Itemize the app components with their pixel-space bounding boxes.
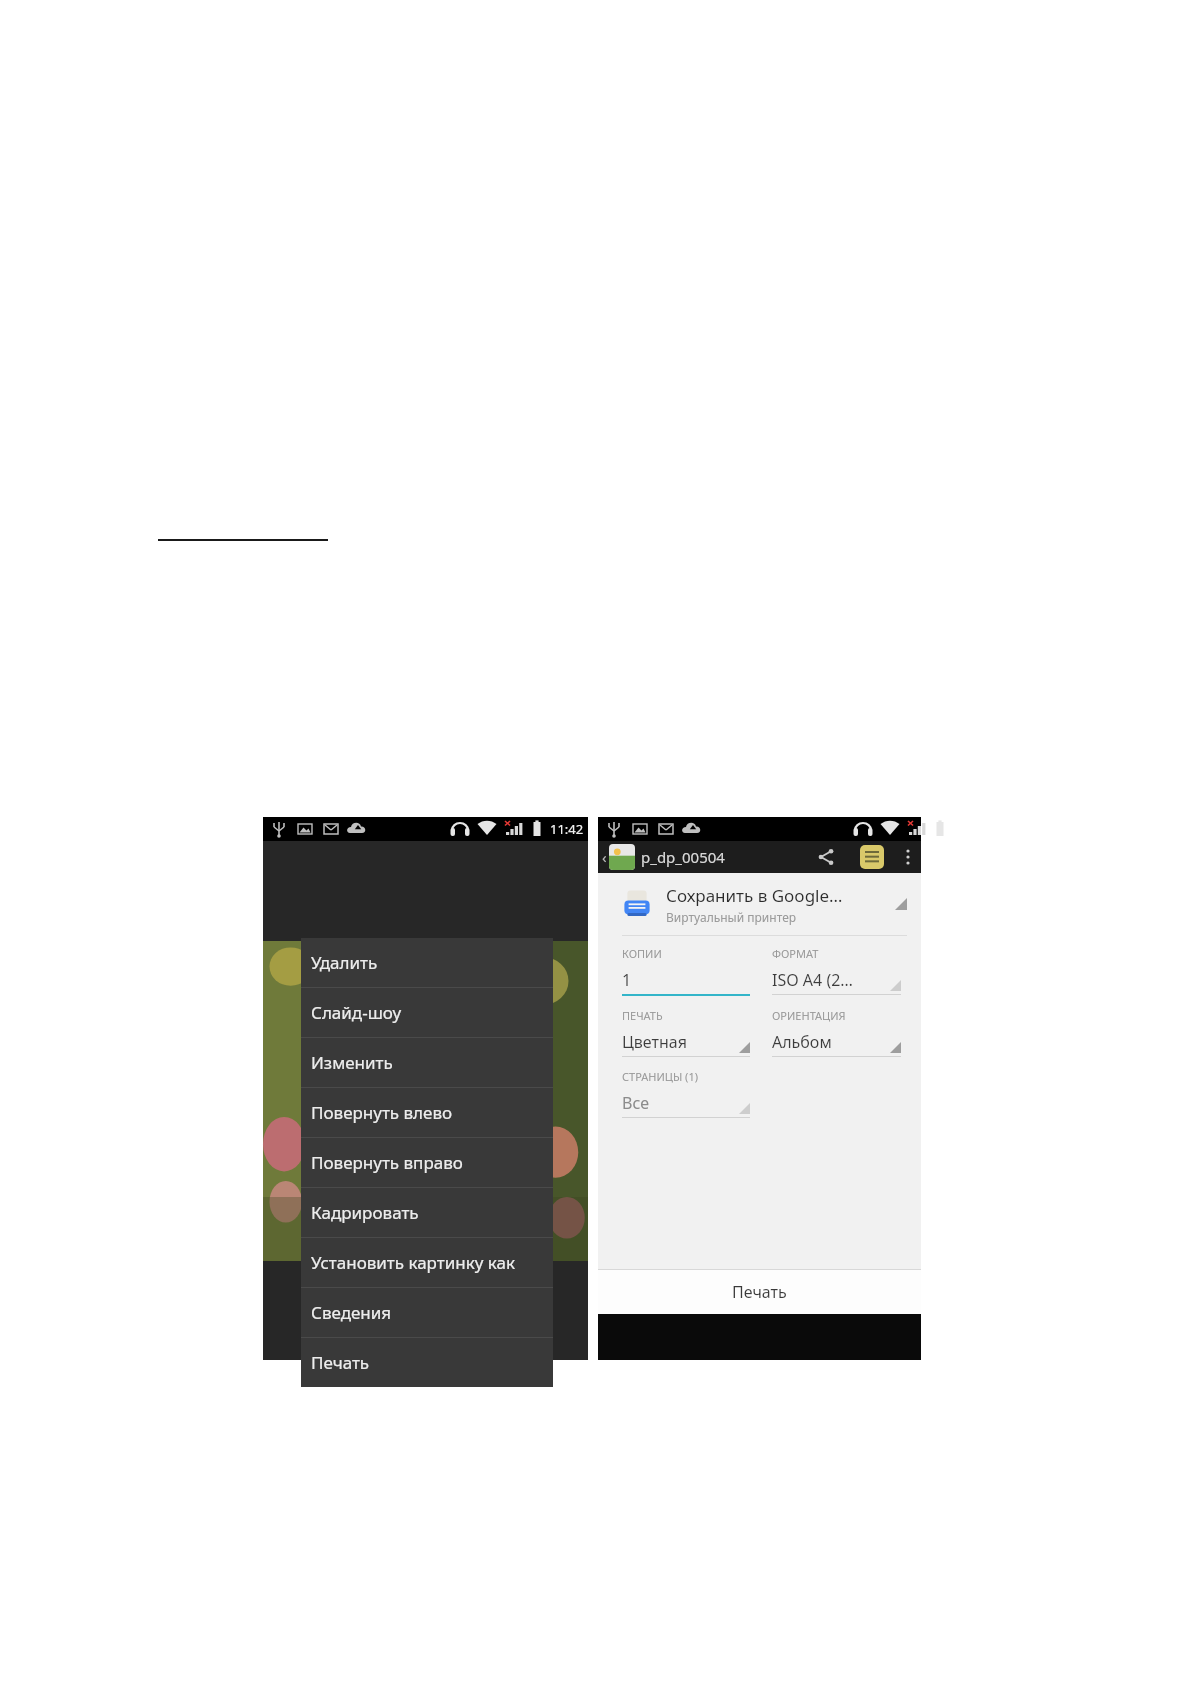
staticText: Виртуальный принтер (666, 909, 797, 925)
staticText: Печать (311, 1351, 370, 1374)
staticText: Альбом (772, 1031, 832, 1053)
button[interactable]: Сведения (301, 1288, 553, 1337)
button[interactable]: Печать (301, 1338, 553, 1387)
staticText: Цветная (622, 1031, 687, 1053)
button[interactable]: Повернуть вправо (301, 1138, 553, 1187)
staticText: 1 (622, 969, 632, 991)
staticText: ISO A4 (2… (772, 969, 854, 991)
staticText: Повернуть влево (311, 1101, 453, 1124)
staticText: Изменить (311, 1051, 393, 1074)
staticText: Печать (732, 1281, 787, 1303)
button[interactable]: Изменить (301, 1038, 553, 1087)
button[interactable]: ФОРМАТ (772, 946, 901, 995)
button[interactable]: ПЕЧАТЬ (622, 1008, 750, 1057)
staticText: ‹ (602, 847, 607, 867)
button[interactable]: More options (895, 841, 921, 873)
staticText: p_dp_00504 (641, 847, 725, 867)
staticText: Сведения (311, 1301, 392, 1324)
button[interactable]: СТРАНИЦЫ (1) (622, 1069, 750, 1118)
button[interactable]: Кадрировать (301, 1188, 553, 1237)
staticText: ОРИЕНТАЦИЯ (772, 1008, 846, 1023)
staticText: ФОРМАТ (772, 946, 819, 961)
button[interactable]: Share (803, 841, 849, 873)
staticText: СТРАНИЦЫ (1) (622, 1069, 698, 1084)
staticText: Кадрировать (311, 1201, 419, 1224)
button[interactable]: Слайд-шоу (301, 988, 553, 1037)
staticText: Установить картинку как (311, 1251, 515, 1274)
staticText: КОПИИ (622, 946, 662, 961)
button[interactable]: КОПИИ (622, 946, 750, 996)
staticText: Сохранить в Google… (666, 884, 843, 907)
staticText: 11:42 (550, 820, 584, 838)
button[interactable]: Печать (598, 1270, 921, 1314)
staticText: Повернуть вправо (311, 1151, 463, 1174)
staticText: Все (622, 1092, 649, 1114)
staticText: ПЕЧАТЬ (622, 1008, 663, 1023)
staticText: Удалить (311, 951, 378, 974)
button[interactable]: Удалить (301, 938, 553, 987)
button[interactable]: ОРИЕНТАЦИЯ (772, 1008, 901, 1057)
button[interactable]: Установить картинку как (301, 1238, 553, 1287)
button[interactable]: Print (849, 841, 895, 873)
staticText: Слайд-шоу (311, 1001, 402, 1024)
button[interactable]: Сохранить в Google… (598, 873, 921, 935)
button[interactable]: Повернуть влево (301, 1088, 553, 1137)
